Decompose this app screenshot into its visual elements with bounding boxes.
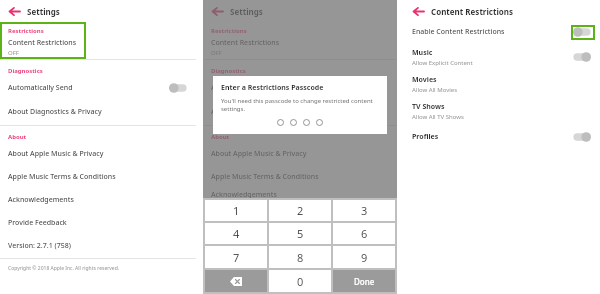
staticText: Apple Music Terms & Conditions <box>8 172 116 182</box>
button[interactable]: Done <box>333 270 395 292</box>
button[interactable]: Toggle <box>168 82 188 94</box>
button[interactable]: Content Restrictions <box>0 38 86 55</box>
staticText: You'll need this passcode to change rest… <box>221 97 379 113</box>
button[interactable]: Back <box>410 3 426 19</box>
button[interactable]: 0 <box>269 270 331 292</box>
staticText: Profiles <box>412 132 439 142</box>
button[interactable]: Movies <box>404 73 600 95</box>
staticText: Restrictions <box>8 27 86 35</box>
staticText: 5 <box>297 226 304 241</box>
button[interactable]: Enable Content Restrictions <box>404 22 600 42</box>
staticText: About Diagnostics & Privacy <box>211 107 305 117</box>
staticText: Allow Explicit Content <box>412 59 473 67</box>
button[interactable]: About Diagnostics & Privacy <box>203 102 397 121</box>
staticText: Done <box>354 276 375 287</box>
button[interactable]: Music <box>404 46 600 68</box>
button[interactable]: Toggle <box>572 131 592 143</box>
staticText: 4 <box>233 226 240 241</box>
staticText: About Apple Music & Privacy <box>8 149 104 159</box>
staticText: Provide Feedback <box>8 218 67 228</box>
button[interactable]: Profiles <box>404 127 600 147</box>
staticText: Settings <box>230 6 263 17</box>
button[interactable]: Automatically Send <box>203 78 397 97</box>
staticText: Acknowledgements <box>8 195 74 205</box>
button[interactable]: 6 <box>333 223 395 244</box>
staticText: About <box>8 133 196 141</box>
staticText: Movies <box>412 75 437 85</box>
staticText: Enable Content Restrictions <box>412 27 505 37</box>
button[interactable]: Version: 2.7.1 (758) <box>0 236 196 255</box>
staticText: Content Restrictions <box>211 38 280 48</box>
staticText: 8 <box>297 250 304 265</box>
button[interactable]: Back <box>209 3 225 19</box>
staticText: 9 <box>361 250 368 265</box>
button[interactable]: Provide Feedback <box>0 213 196 232</box>
staticText: 0 <box>297 274 304 289</box>
staticText: Diagnostics <box>8 67 196 75</box>
staticText: TV Shows <box>412 102 445 112</box>
staticText: Settings <box>27 6 60 17</box>
button[interactable]: About Apple Music & Privacy <box>0 144 196 163</box>
button[interactable]: Apple Music Terms & Conditions <box>0 167 196 186</box>
button[interactable]: 5 <box>269 223 331 244</box>
staticText: About <box>211 133 397 141</box>
button[interactable]: Apple Music Terms & Conditions <box>203 167 397 186</box>
staticText: OFF <box>8 49 19 55</box>
button[interactable]: 1 <box>205 200 267 221</box>
staticText: About Diagnostics & Privacy <box>8 107 102 117</box>
staticText: Copyright © 2018 Apple Inc. All rights r… <box>8 265 120 272</box>
button[interactable]: Delete <box>205 270 267 292</box>
staticText: Allow All Movies <box>412 86 458 94</box>
button[interactable]: Acknowledgements <box>0 190 196 209</box>
button[interactable]: 3 <box>333 200 395 221</box>
staticText: OFF <box>211 49 222 55</box>
button[interactable]: Acknowledgements <box>203 190 397 198</box>
button[interactable]: About Apple Music & Privacy <box>203 144 397 163</box>
staticText: Acknowledgements <box>211 190 277 198</box>
button[interactable]: 8 <box>269 246 331 268</box>
staticText: 3 <box>361 203 368 218</box>
button[interactable]: Back <box>6 3 22 19</box>
staticText: 2 <box>297 203 304 218</box>
staticText: Restrictions <box>211 27 397 35</box>
staticText: Content Restrictions <box>431 6 514 17</box>
button[interactable]: Content Restrictions <box>203 38 397 55</box>
button[interactable]: 7 <box>205 246 267 268</box>
button[interactable]: 9 <box>333 246 395 268</box>
button[interactable]: Toggle <box>572 26 592 38</box>
staticText: Automatically Send <box>211 83 276 93</box>
staticText: Enter a Restrictions Passcode <box>221 83 324 93</box>
staticText: 7 <box>233 250 240 265</box>
button[interactable]: 2 <box>269 200 331 221</box>
button[interactable]: 4 <box>205 223 267 244</box>
staticText: Version: 2.7.1 (758) <box>8 241 71 251</box>
staticText: 6 <box>361 226 368 241</box>
staticText: Automatically Send <box>8 83 73 93</box>
button[interactable]: About Diagnostics & Privacy <box>0 102 196 121</box>
staticText: Diagnostics <box>211 67 397 75</box>
button[interactable]: Automatically Send <box>0 78 196 97</box>
staticText: Apple Music Terms & Conditions <box>211 172 319 182</box>
staticText: About Apple Music & Privacy <box>211 149 307 159</box>
staticText: Allow All TV Shows <box>412 113 464 121</box>
staticText: 1 <box>233 203 240 218</box>
staticText: Content Restrictions <box>8 38 77 48</box>
button[interactable]: Toggle <box>572 51 592 63</box>
button[interactable]: TV Shows <box>404 100 600 122</box>
staticText: Music <box>412 48 433 58</box>
